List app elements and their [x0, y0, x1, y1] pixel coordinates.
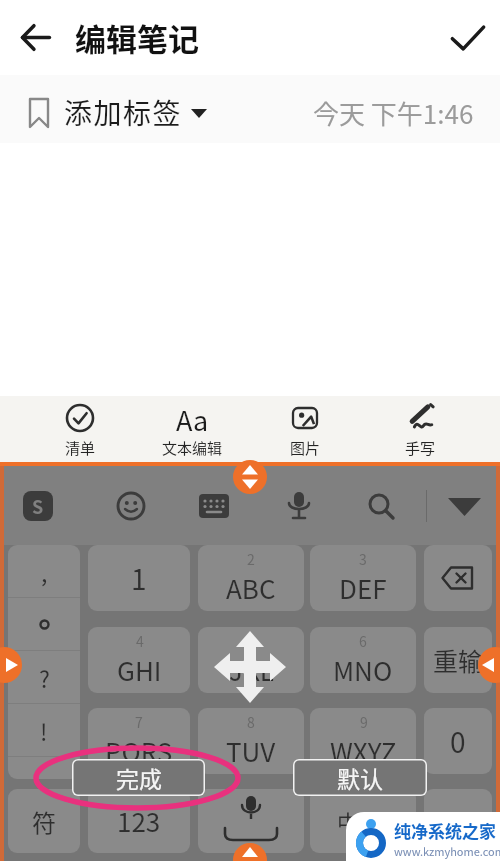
- button[interactable]: 0: [424, 708, 492, 774]
- staticText: 5: [248, 631, 256, 651]
- staticText: ...: [450, 807, 467, 836]
- staticText: PQRS: [105, 732, 173, 770]
- button[interactable]: 手写: [370, 396, 470, 462]
- button[interactable]: 中/英: [310, 789, 416, 853]
- button[interactable]: 6: [310, 627, 416, 693]
- button[interactable]: 2: [198, 545, 304, 611]
- staticText: 4: [136, 631, 144, 651]
- staticText: TUV: [226, 732, 276, 770]
- button[interactable]: Aa: [142, 396, 242, 462]
- staticText: DEF: [339, 569, 387, 607]
- button[interactable]: 图片: [255, 396, 355, 462]
- button[interactable]: [0, 0, 62, 75]
- button[interactable]: 添加标签: [28, 92, 207, 133]
- staticText: 手写: [405, 437, 436, 459]
- button[interactable]: 5: [198, 627, 304, 693]
- staticText: 9: [360, 712, 368, 732]
- staticText: 默认: [337, 761, 383, 794]
- button[interactable]: 完成: [72, 759, 205, 796]
- staticText: S: [32, 493, 44, 519]
- staticText: MNO: [333, 651, 393, 689]
- staticText: JKL: [229, 651, 274, 689]
- staticText: 重输: [433, 642, 484, 678]
- button[interactable]: 1: [88, 545, 190, 611]
- button[interactable]: [426, 466, 500, 545]
- button[interactable]: [233, 460, 267, 494]
- button[interactable]: [343, 466, 419, 545]
- button[interactable]: [0, 647, 22, 683]
- staticText: !: [40, 714, 48, 747]
- staticText: 2: [247, 549, 255, 569]
- button[interactable]: 7: [88, 708, 190, 774]
- staticText: 中/英: [337, 805, 390, 837]
- button[interactable]: [176, 466, 252, 545]
- staticText: 清单: [65, 437, 96, 459]
- button[interactable]: 9: [310, 708, 416, 774]
- staticText: ,: [41, 555, 48, 588]
- staticText: 符: [32, 804, 56, 839]
- button[interactable]: 重输: [424, 627, 492, 693]
- staticText: 8: [247, 712, 255, 732]
- staticText: 添加标签: [64, 92, 183, 133]
- button[interactable]: 清单: [30, 396, 130, 462]
- staticText: 今天 下午1:46: [313, 94, 474, 132]
- button[interactable]: [478, 647, 500, 683]
- button[interactable]: [436, 0, 500, 75]
- staticText: ABC: [226, 569, 276, 607]
- button[interactable]: 默认: [293, 759, 427, 796]
- staticText: 0: [450, 721, 466, 762]
- staticText: WXYZ: [330, 732, 397, 770]
- button[interactable]: [261, 466, 337, 545]
- button[interactable]: [424, 545, 492, 611]
- staticText: www.kzmyhome.com: [394, 843, 500, 859]
- button[interactable]: [198, 789, 304, 853]
- button[interactable]: ,: [8, 545, 80, 779]
- staticText: GHI: [117, 651, 162, 689]
- button[interactable]: ...: [424, 789, 492, 853]
- button[interactable]: 3: [310, 545, 416, 611]
- staticText: ?: [39, 661, 50, 694]
- staticText: 1: [131, 558, 147, 599]
- staticText: 7: [135, 712, 143, 732]
- button[interactable]: 123: [88, 789, 190, 853]
- button[interactable]: S: [0, 466, 76, 545]
- staticText: 编辑笔记: [75, 15, 199, 60]
- staticText: 123: [117, 802, 161, 840]
- button[interactable]: [233, 843, 267, 861]
- button[interactable]: [93, 466, 169, 545]
- staticText: 完成: [116, 761, 162, 794]
- staticText: 图片: [290, 437, 321, 459]
- staticText: 文本编辑: [162, 437, 223, 459]
- button[interactable]: 符: [8, 789, 80, 853]
- staticText: 6: [359, 631, 367, 651]
- button[interactable]: 8: [198, 708, 304, 774]
- staticText: Aa: [176, 400, 209, 436]
- staticText: 3: [359, 549, 367, 569]
- staticText: 纯净系统之家: [394, 818, 496, 843]
- button[interactable]: 4: [88, 627, 190, 693]
